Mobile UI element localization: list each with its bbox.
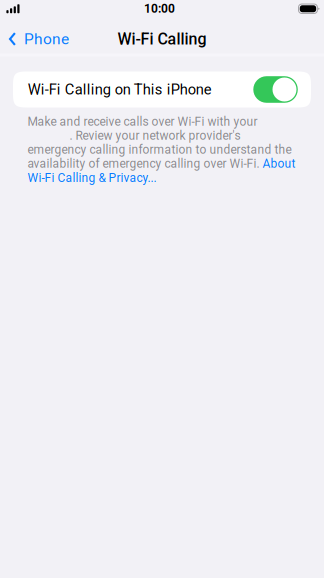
button[interactable]: Wi-Fi Calling on This iPhone bbox=[13, 71, 311, 107]
staticText: Wi-Fi Calling bbox=[117, 30, 206, 48]
button[interactable]: Phone bbox=[0, 25, 75, 53]
staticText: Phone bbox=[24, 30, 69, 48]
staticText: Make and receive calls over Wi-Fi with y… bbox=[27, 114, 295, 185]
staticText: Wi-Fi Calling on This iPhone bbox=[28, 81, 212, 98]
staticText: 10:00 bbox=[144, 2, 175, 16]
